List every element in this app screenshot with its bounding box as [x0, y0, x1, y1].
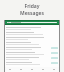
button[interactable]	[6, 36, 58, 40]
button[interactable]	[6, 56, 58, 60]
button[interactable]	[6, 41, 58, 45]
button[interactable]	[6, 61, 58, 65]
staticText: Messages	[20, 10, 44, 17]
button[interactable]	[6, 31, 58, 35]
button[interactable]	[6, 51, 58, 55]
button[interactable]: Chats	[5, 67, 15, 72]
button[interactable]: Groups	[37, 67, 48, 72]
button[interactable]: Search messages	[7, 22, 57, 23]
button[interactable]	[6, 46, 58, 50]
button[interactable]: Friday	[0, 3, 64, 17]
button[interactable]	[6, 26, 58, 30]
staticText: Friday	[24, 3, 40, 10]
button[interactable]: Settings	[48, 67, 59, 72]
button[interactable]: Search messages	[5, 20, 59, 25]
button[interactable]: Status	[15, 67, 26, 72]
button[interactable]: Calls	[26, 67, 37, 72]
